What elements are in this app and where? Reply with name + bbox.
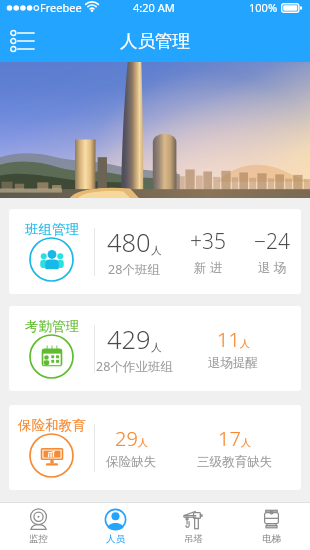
staticText: 退 场 [258, 259, 287, 276]
staticText: 480 [107, 225, 151, 260]
staticText: 新 进 [194, 259, 223, 276]
staticText: 人 [240, 337, 250, 350]
button[interactable]: 班组管理 [9, 209, 301, 294]
staticText: 429 [107, 322, 151, 357]
staticText: 人 [138, 436, 148, 449]
staticText: 吊塔 [184, 533, 203, 545]
staticText: 人 [151, 244, 162, 257]
button[interactable]: 监控 [0, 503, 77, 550]
staticText: 三级教育缺失 [197, 454, 272, 470]
staticText: 人 [151, 341, 162, 354]
button[interactable]: 电梯 [232, 503, 310, 550]
staticText: 退场提醒 [208, 355, 258, 371]
staticText: 17 [218, 425, 241, 452]
staticText: 28个班组 [108, 261, 160, 278]
button[interactable]: Menu [0, 20, 42, 62]
staticText: 4:20 AM [133, 0, 175, 15]
button[interactable]: 考勤管理 [9, 306, 301, 391]
staticText: 28个作业班组 [96, 358, 173, 375]
staticText: 11 [217, 326, 240, 353]
staticText: 电梯 [262, 533, 281, 545]
staticText: Freebee [40, 0, 82, 15]
staticText: 班组管理 [25, 221, 79, 238]
button[interactable]: 吊塔 [154, 503, 232, 550]
staticText: 监控 [29, 533, 48, 545]
staticText: +35 [190, 227, 226, 256]
button[interactable]: 人员 [77, 503, 154, 550]
staticText: 29 [115, 425, 138, 452]
staticText: 人员管理 [120, 30, 190, 52]
staticText: 保险和教育 [18, 417, 86, 434]
button[interactable]: 保险和教育 [9, 405, 301, 490]
staticText: 人员 [106, 533, 125, 545]
staticText: 考勤管理 [25, 318, 79, 335]
staticText: −24 [254, 227, 290, 256]
staticText: 人 [241, 436, 251, 449]
staticText: 保险缺失 [106, 454, 156, 470]
staticText: 100% [249, 0, 278, 15]
